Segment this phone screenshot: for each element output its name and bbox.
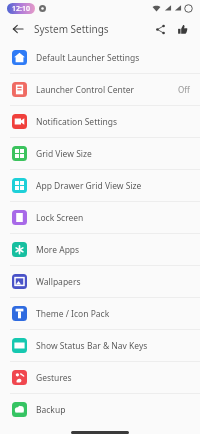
button[interactable]: More Apps <box>0 234 200 265</box>
staticText: System Settings <box>34 22 109 36</box>
staticText: Notification Settings <box>36 116 118 128</box>
staticText: Gestures <box>36 372 72 384</box>
staticText: Default Launcher Settings <box>36 52 140 64</box>
button[interactable]: Theme / Icon Pack <box>0 298 200 329</box>
staticText: App Drawer Grid View Size <box>36 180 142 192</box>
staticText: Show Status Bar & Nav Keys <box>36 340 148 352</box>
staticText: Lock Screen <box>36 212 84 224</box>
staticText: Backup <box>36 404 66 416</box>
button[interactable]: Share <box>150 19 170 39</box>
button[interactable]: Default Launcher Settings <box>0 42 200 73</box>
button[interactable]: Lock Screen <box>0 202 200 233</box>
button[interactable]: Backup <box>0 394 200 425</box>
staticText: Wallpapers <box>36 276 81 288</box>
staticText: 12:10 <box>12 4 30 14</box>
button[interactable]: Gestures <box>0 362 200 393</box>
staticText: Grid View Size <box>36 148 92 160</box>
button[interactable]: Wallpapers <box>0 266 200 297</box>
button[interactable]: Back <box>8 19 28 39</box>
staticText: Launcher Control Center <box>36 84 135 96</box>
staticText: Off <box>178 84 190 95</box>
button[interactable]: Grid View Size <box>0 138 200 169</box>
staticText: Theme / Icon Pack <box>36 308 110 320</box>
button[interactable]: Launcher Control Center <box>0 74 200 105</box>
button[interactable]: Rate <box>172 19 192 39</box>
staticText: More Apps <box>36 244 80 256</box>
button[interactable]: App Drawer Grid View Size <box>0 170 200 201</box>
button[interactable]: Notification Settings <box>0 106 200 137</box>
button[interactable]: Show Status Bar & Nav Keys <box>0 330 200 361</box>
